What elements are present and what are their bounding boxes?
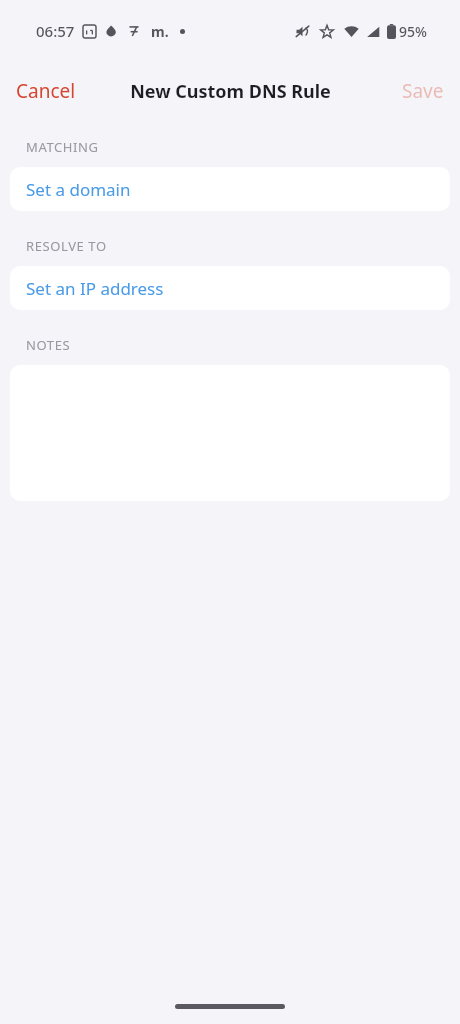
staticText: m. <box>151 22 169 41</box>
staticText: 95% <box>399 22 427 41</box>
staticText: NOTES <box>26 336 71 354</box>
button[interactable]: Set a domain <box>10 167 450 211</box>
staticText: MATCHING <box>26 138 99 156</box>
button[interactable]: Cancel <box>0 70 92 112</box>
button[interactable]: Set an IP address <box>10 266 450 310</box>
staticText: New Custom DNS Rule <box>130 79 331 104</box>
staticText: Set an IP address <box>26 277 164 300</box>
staticText: Save <box>402 78 444 104</box>
staticText: 06:57 <box>36 21 75 41</box>
staticText: RESOLVE TO <box>26 237 107 255</box>
staticText: Set a domain <box>26 178 131 201</box>
button[interactable]: Save <box>386 70 460 112</box>
staticText: Cancel <box>16 78 76 104</box>
